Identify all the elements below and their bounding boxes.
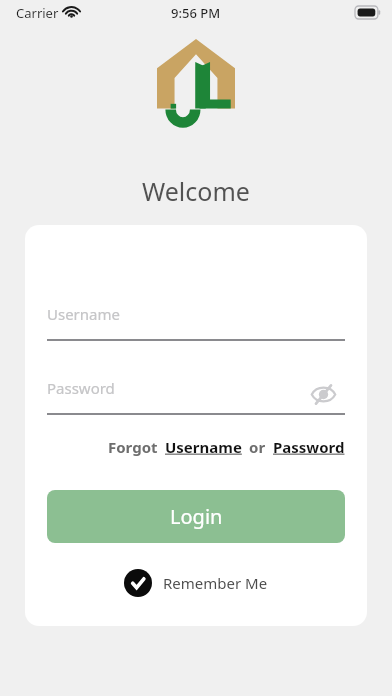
button[interactable]: Username bbox=[165, 437, 242, 457]
staticText: Forgot bbox=[108, 437, 158, 457]
staticText: or bbox=[249, 437, 266, 457]
button[interactable]: Login bbox=[47, 490, 345, 543]
staticText: Remember Me bbox=[163, 573, 268, 593]
button[interactable]: Remember Me bbox=[124, 569, 268, 597]
staticText: Username bbox=[47, 304, 120, 324]
staticText: Carrier bbox=[16, 4, 59, 22]
staticText: Password bbox=[47, 378, 115, 398]
button[interactable]: Password bbox=[273, 437, 345, 457]
staticText: Password bbox=[273, 437, 345, 457]
staticText: Login bbox=[170, 503, 223, 530]
staticText: 9:56 PM bbox=[171, 4, 221, 22]
staticText: Welcome bbox=[142, 174, 250, 208]
button[interactable]: Toggle password visibility bbox=[300, 371, 346, 417]
staticText: Username bbox=[165, 437, 242, 457]
